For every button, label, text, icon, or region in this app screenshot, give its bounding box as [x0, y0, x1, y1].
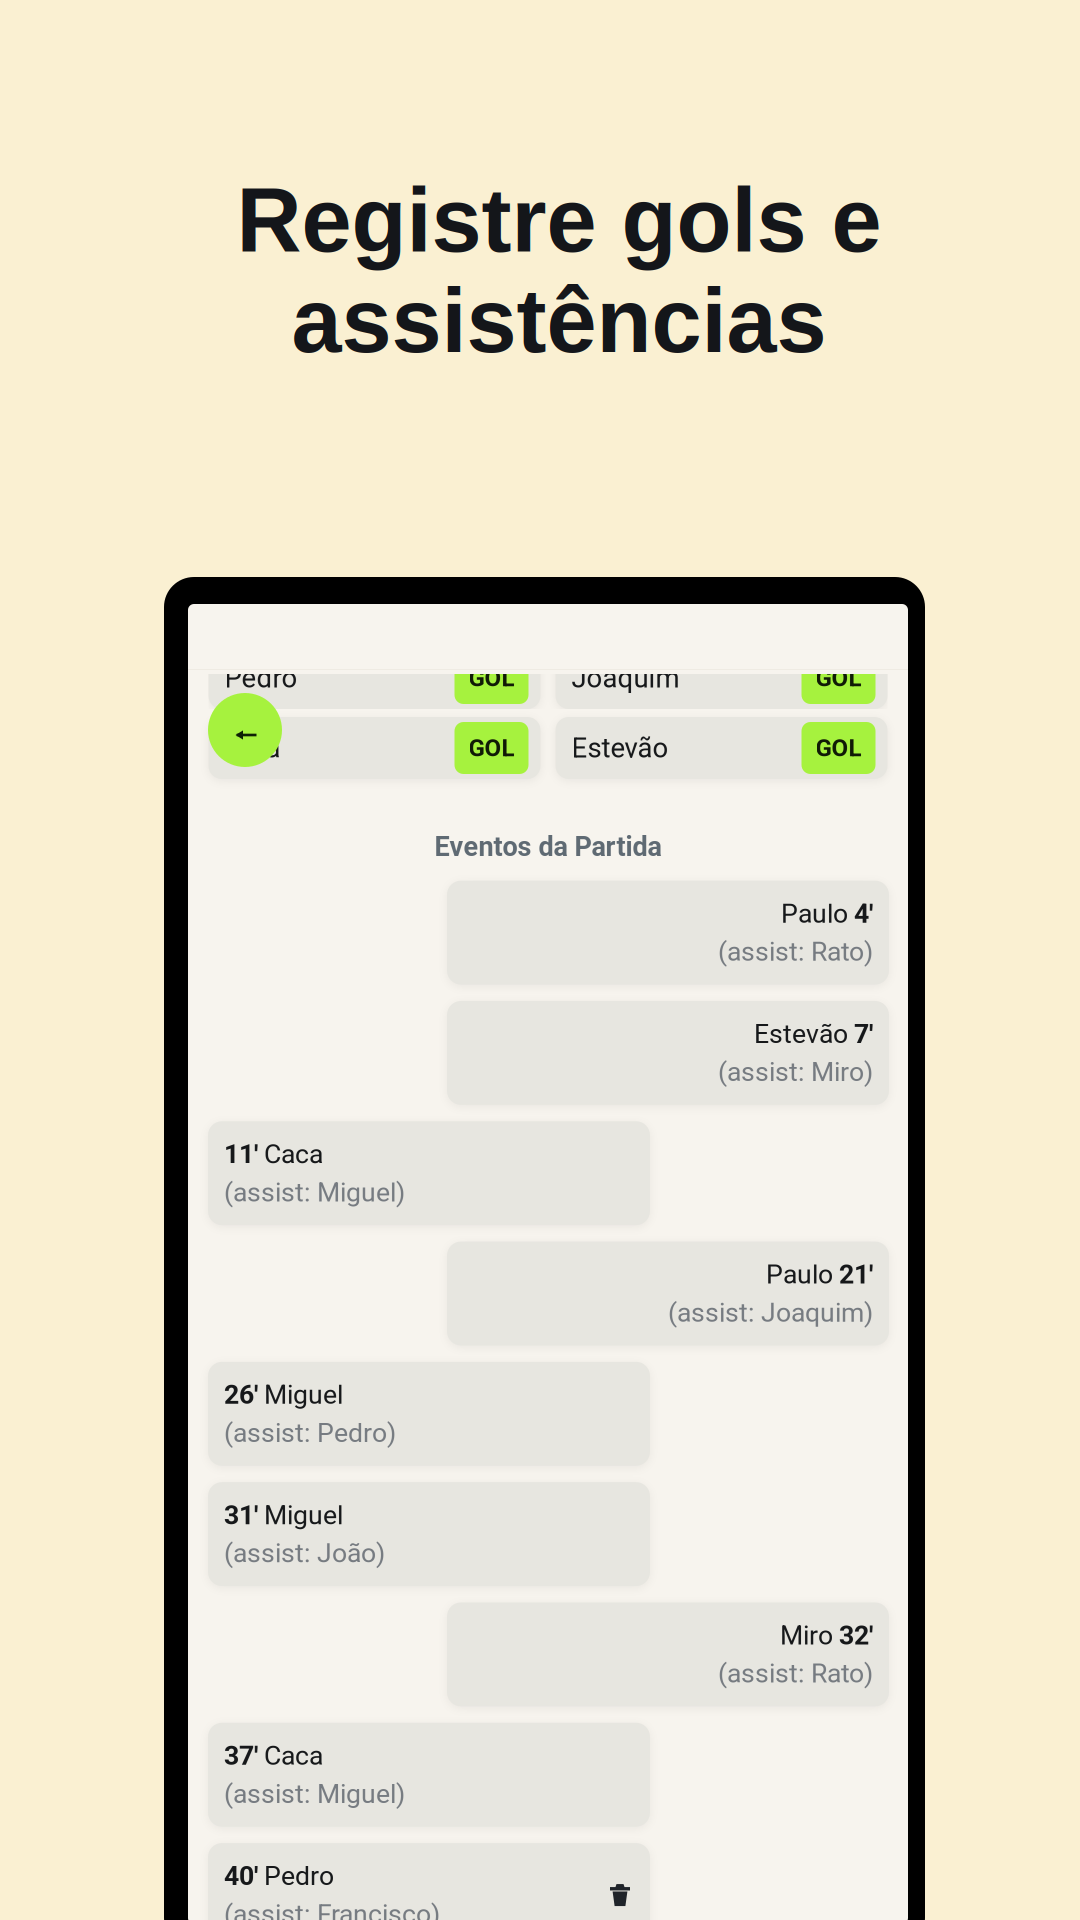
staticText: Joaquim [571, 662, 679, 694]
staticText: Miguel [264, 1379, 343, 1410]
staticText: 40' [224, 1860, 258, 1892]
staticText: GOL [815, 664, 861, 692]
staticText: Rata [224, 732, 280, 764]
button[interactable]: Miro [447, 1602, 889, 1706]
staticText: 26' [224, 1379, 258, 1410]
staticText: (assist: Miguel) [224, 1778, 405, 1809]
staticText: GOL [815, 734, 861, 762]
staticText: (assist: Francisco) [224, 1898, 440, 1920]
button[interactable]: 37' [208, 1723, 650, 1827]
staticText: Miro [780, 1620, 833, 1651]
button[interactable]: 40' [208, 1843, 650, 1920]
staticText: Eventos da Partida [434, 831, 661, 863]
staticText: GOL [468, 664, 514, 692]
staticText: GOL [468, 734, 514, 762]
button[interactable]: Estevão [447, 1001, 889, 1105]
staticText: assistências [291, 270, 826, 371]
staticText: (assist: Miro) [718, 1056, 873, 1088]
staticText: 11' [224, 1139, 258, 1170]
button[interactable]: Voltar [208, 693, 282, 767]
staticText: 37' [224, 1740, 258, 1771]
staticText: Pedro [264, 1860, 334, 1892]
button[interactable]: 11' [208, 1121, 650, 1225]
staticText: (assist: Joaquim) [668, 1297, 873, 1328]
button[interactable]: Rata [208, 717, 540, 779]
staticText: 4' [854, 898, 873, 929]
button[interactable]: Paulo [447, 881, 889, 985]
staticText: 7' [854, 1018, 873, 1049]
staticText: 31' [224, 1499, 258, 1531]
button[interactable]: Joaquim [555, 647, 887, 709]
staticText: Paulo [766, 1259, 833, 1290]
staticText: (assist: Pedro) [224, 1417, 396, 1448]
staticText: (assist: Rato) [718, 936, 873, 967]
staticText: (assist: João) [224, 1538, 385, 1569]
staticText: 21' [839, 1259, 873, 1290]
button[interactable]: Estevão [555, 717, 887, 779]
staticText: 32' [839, 1620, 873, 1651]
button[interactable]: 31' [208, 1482, 650, 1586]
staticText: (assist: Rato) [718, 1658, 873, 1689]
staticText: Caca [264, 1740, 323, 1771]
staticText: Estevão [754, 1018, 848, 1049]
staticText: Miguel [264, 1499, 343, 1531]
staticText: (assist: Miguel) [224, 1177, 405, 1208]
button[interactable]: 26' [208, 1362, 650, 1466]
staticText: Paulo [781, 898, 848, 929]
button[interactable]: Paulo [447, 1241, 889, 1345]
staticText: Pedro [224, 662, 297, 694]
staticText: Estevão [571, 732, 668, 764]
staticText: Registre gols e [236, 170, 881, 270]
button[interactable]: Pedro [208, 647, 540, 709]
staticText: Caca [264, 1139, 323, 1170]
